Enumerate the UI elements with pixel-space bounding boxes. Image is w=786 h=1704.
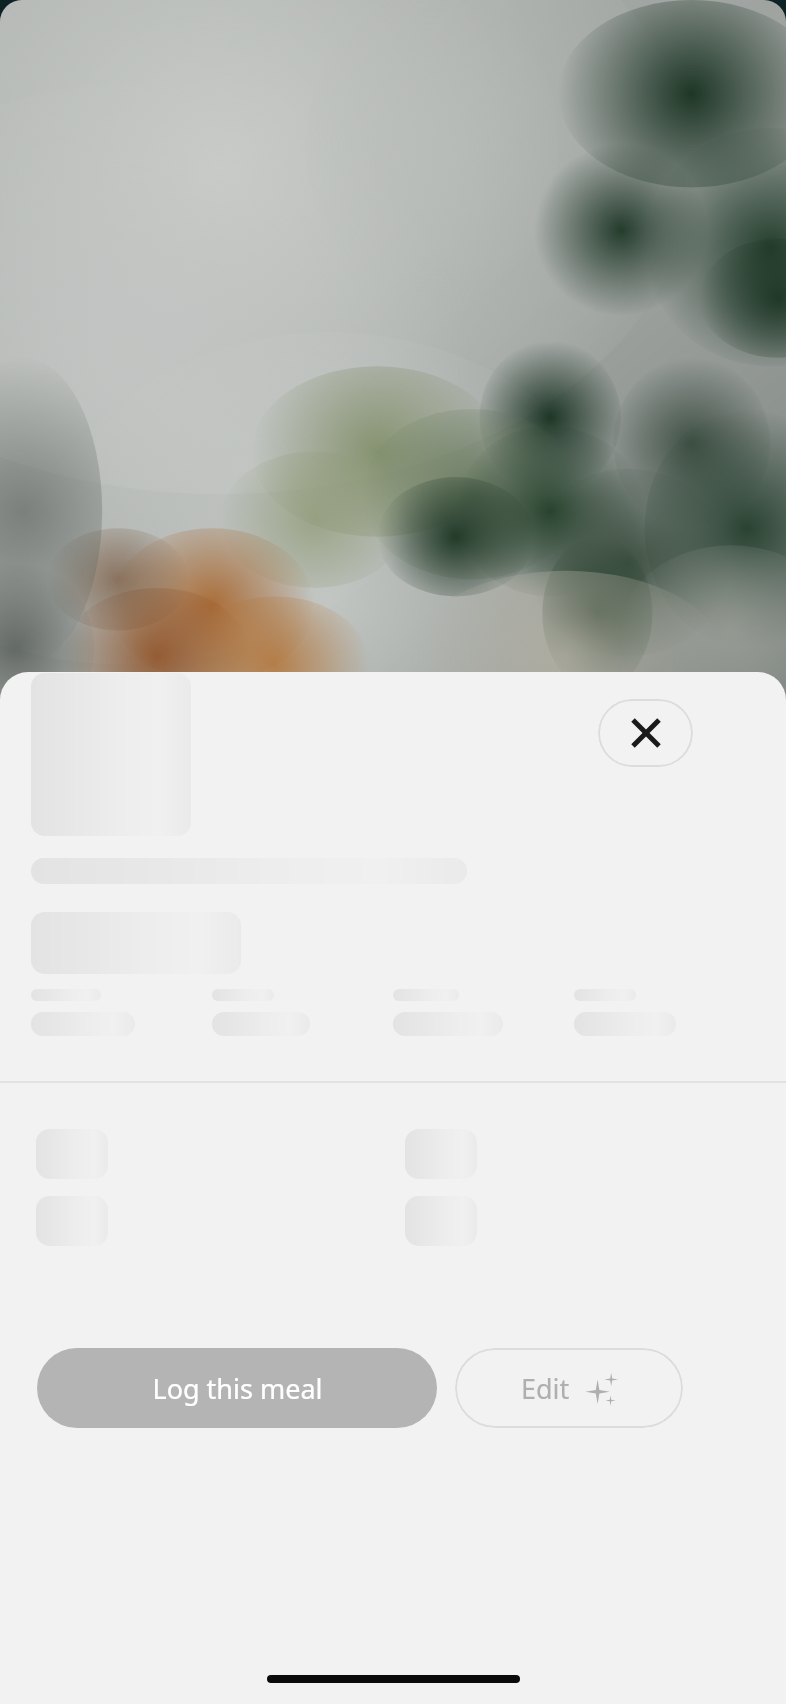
button[interactable]: Edit bbox=[455, 1348, 683, 1428]
button[interactable]: Log this meal bbox=[37, 1348, 437, 1428]
staticText: Log this meal bbox=[152, 1370, 323, 1407]
staticText: Edit bbox=[521, 1370, 570, 1407]
button[interactable]: Close bbox=[598, 699, 693, 767]
